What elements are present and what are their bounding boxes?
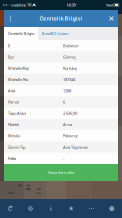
staticText: Mahalle No bbox=[8, 77, 28, 82]
staticText: Öznitelik Bilgisi bbox=[39, 15, 82, 22]
staticText: Tapu Alanı bbox=[8, 111, 26, 116]
button[interactable]: Close bbox=[105, 10, 118, 27]
staticText: Ada bbox=[8, 88, 15, 93]
staticText: Ana Taşınmaz bbox=[63, 144, 88, 150]
staticText: Mevkii bbox=[8, 133, 20, 138]
button[interactable]: Menu bbox=[4, 10, 17, 27]
staticText: Balıkesir bbox=[63, 43, 79, 48]
staticText: - bbox=[63, 156, 64, 161]
staticText: %64 bbox=[106, 2, 113, 8]
staticText: Arsa bbox=[63, 122, 72, 127]
button[interactable]: Favorilere ekle bbox=[4, 164, 118, 181]
staticText: vodafone TR bbox=[11, 2, 31, 8]
button[interactable]: Locate bbox=[20, 199, 41, 218]
staticText: 6 bbox=[63, 99, 65, 105]
staticText: Mahalle/Köy bbox=[8, 65, 29, 71]
button[interactable]: More bbox=[81, 199, 102, 218]
button[interactable]: Bina/BD Listesi bbox=[38, 27, 72, 40]
staticText: 187344 bbox=[63, 77, 75, 82]
button[interactable]: Öznitelik Bilgisi bbox=[4, 27, 38, 40]
staticText: Parsel bbox=[8, 99, 19, 105]
button[interactable]: Favorites bbox=[61, 199, 81, 218]
staticText: Nitelik bbox=[8, 122, 19, 127]
staticText: İl bbox=[8, 43, 10, 48]
staticText: Kurtuluş bbox=[63, 65, 77, 71]
button[interactable]: Print bbox=[102, 199, 122, 218]
staticText: İlçe bbox=[8, 54, 14, 60]
staticText: Zemin Tip bbox=[8, 144, 25, 150]
staticText: Öznitelik Bilgisi bbox=[7, 31, 34, 36]
staticText: Gömeç bbox=[63, 54, 76, 60]
button[interactable]: Refresh bbox=[0, 199, 20, 218]
button[interactable]: Info bbox=[41, 199, 61, 218]
staticText: Palavroz bbox=[63, 133, 78, 138]
staticText: Favorilere ekle bbox=[48, 170, 74, 175]
staticText: 1288 bbox=[63, 88, 71, 93]
staticText: Bina/BD Listesi bbox=[41, 31, 68, 36]
staticText: 2.626,00 bbox=[63, 111, 77, 116]
staticText: Pafta bbox=[8, 156, 16, 161]
staticText: 14:39 bbox=[67, 2, 76, 8]
